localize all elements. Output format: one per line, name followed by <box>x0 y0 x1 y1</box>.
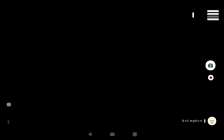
button[interactable]: Recents <box>123 129 146 139</box>
button[interactable]: Profile <box>207 116 217 126</box>
button[interactable]: Send anywhere <box>182 116 205 125</box>
button[interactable]: Gallery <box>4 99 14 109</box>
button[interactable]: Take photo <box>204 59 217 72</box>
button[interactable]: Menu <box>206 8 220 22</box>
staticText: Send anywhere <box>182 119 203 123</box>
button[interactable]: Home <box>101 129 123 139</box>
button[interactable]: Record video <box>207 74 215 82</box>
button[interactable]: Back <box>78 129 101 139</box>
